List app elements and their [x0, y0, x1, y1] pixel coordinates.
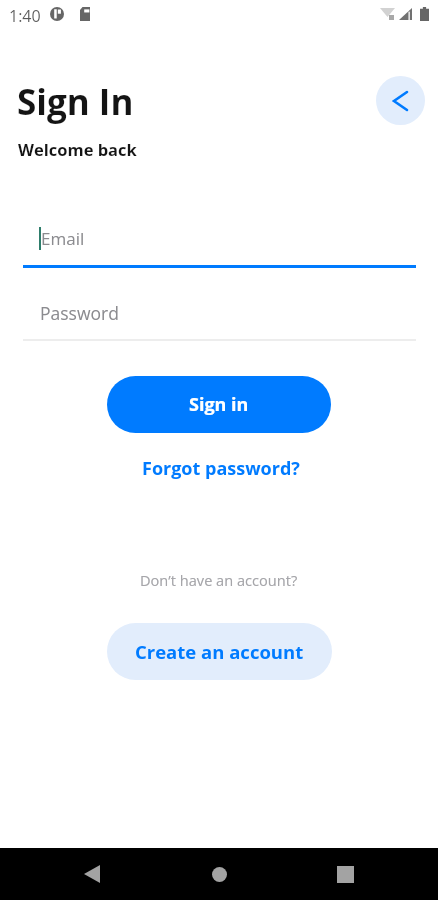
button[interactable]: Create an account [107, 623, 332, 680]
staticText: Don’t have an account? [140, 570, 298, 590]
button[interactable]: Forgot password? [140, 452, 301, 484]
button[interactable]: Email [23, 222, 416, 268]
button[interactable]: Back [376, 76, 425, 125]
staticText: Forgot password? [142, 456, 300, 481]
staticText: Sign in [189, 392, 249, 417]
button[interactable]: Password [23, 295, 416, 341]
button[interactable]: Home [183, 848, 255, 900]
button[interactable]: Sign in [107, 376, 331, 433]
button[interactable]: Back [56, 848, 128, 900]
staticText: Password [40, 301, 119, 325]
staticText: Welcome back [18, 138, 137, 160]
staticText: Create an account [135, 639, 304, 664]
staticText: Sign In [17, 78, 134, 126]
staticText: Email [41, 227, 85, 250]
button[interactable]: Recent apps [309, 848, 381, 900]
staticText: 1:40 [9, 5, 41, 27]
